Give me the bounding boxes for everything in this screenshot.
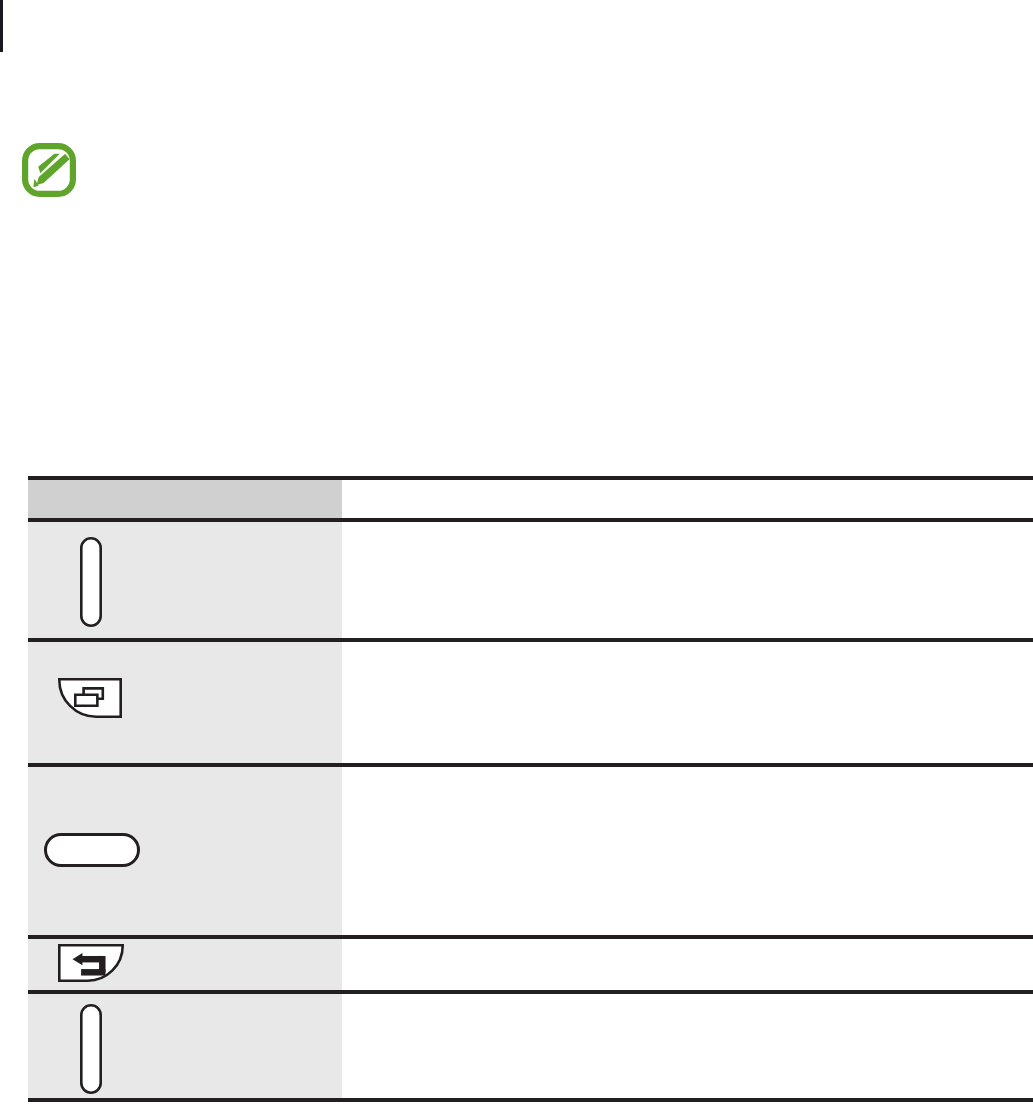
button[interactable]: Power key	[80, 537, 102, 627]
button[interactable]: Home key	[44, 833, 140, 867]
button[interactable]: Recents key	[58, 678, 122, 718]
button[interactable]: Back key	[58, 944, 124, 982]
button[interactable]: Volume key	[80, 1004, 102, 1094]
